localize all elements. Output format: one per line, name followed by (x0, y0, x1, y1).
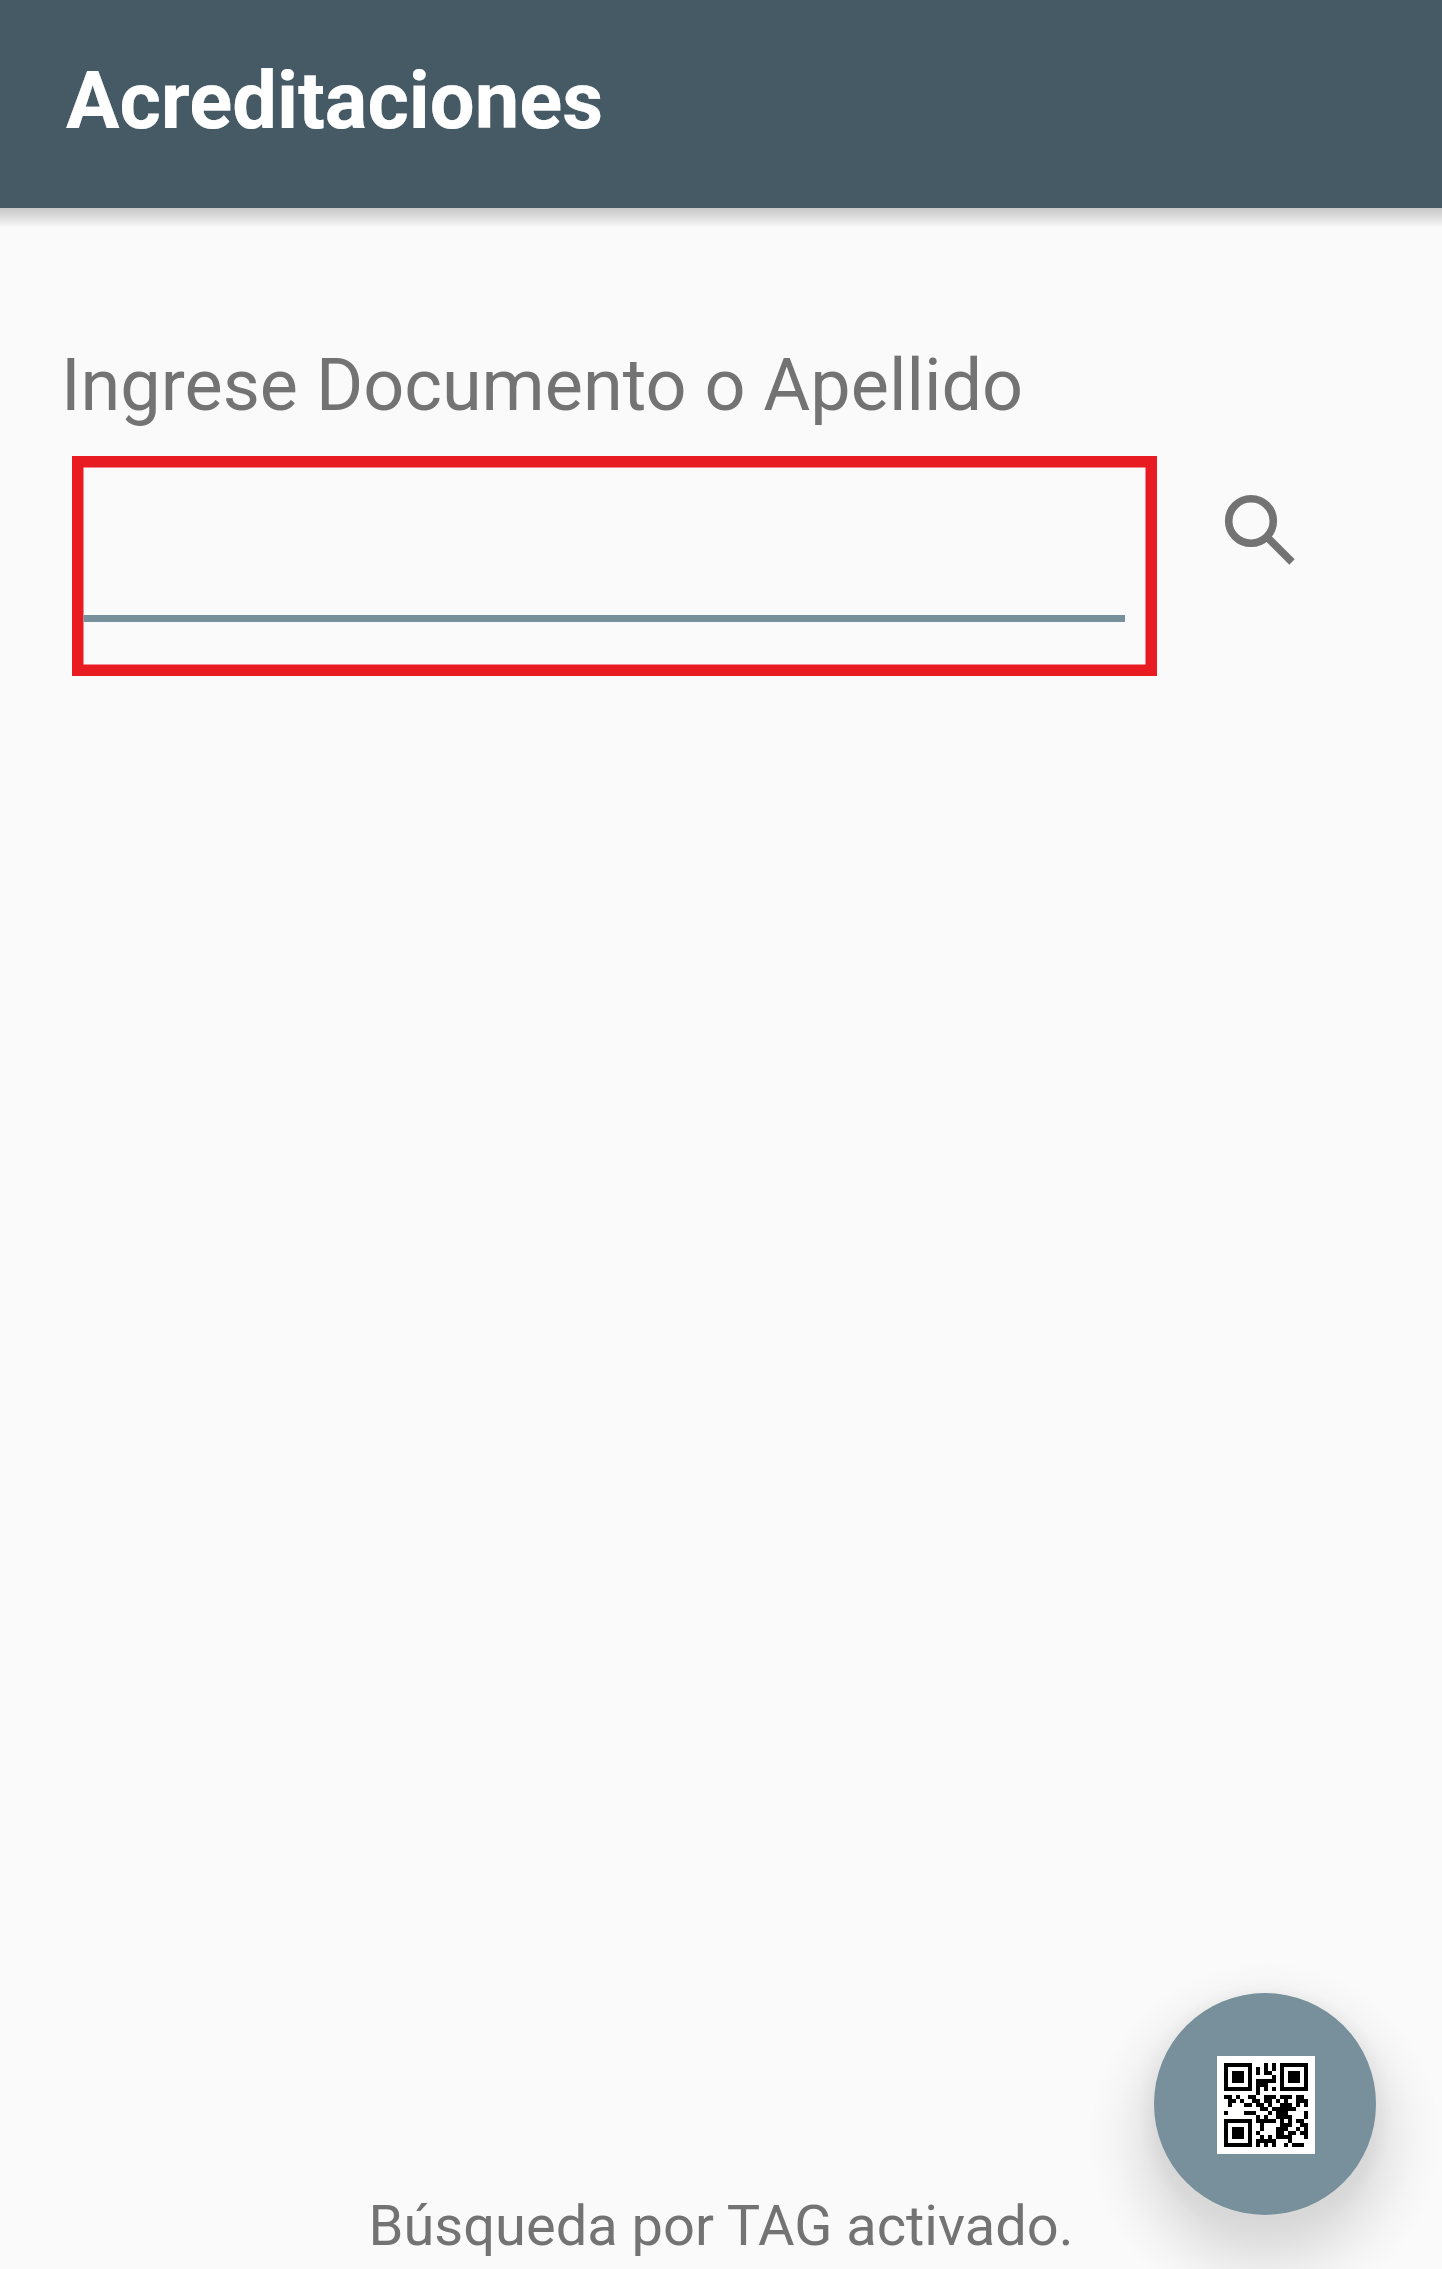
button[interactable]: Buscar (1161, 431, 1341, 611)
button[interactable] (72, 456, 1157, 676)
staticText: Ingrese Documento o Apellido (61, 343, 1024, 427)
button[interactable]: Acreditaciones (0, 0, 1442, 208)
button[interactable]: Escanear código QR (1154, 1993, 1376, 2215)
staticText: Acreditaciones (66, 54, 604, 147)
staticText: Búsqueda por TAG activado. (0, 2193, 1442, 2259)
